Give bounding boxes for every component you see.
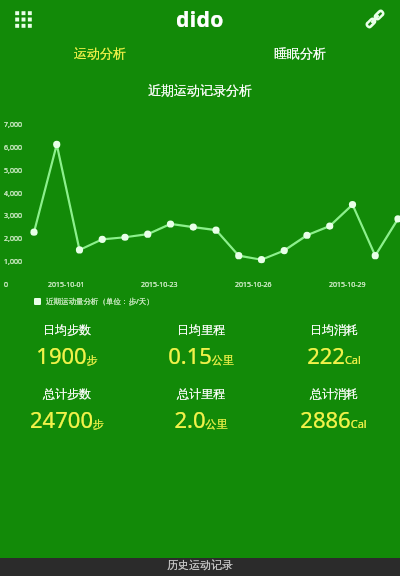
staticText: 总计消耗 <box>310 386 358 401</box>
staticText: 0 <box>4 280 9 290</box>
button[interactable]: 日均消耗 <box>267 322 400 370</box>
staticText: 6,000 <box>4 143 22 153</box>
button[interactable]: 历史运动记录 <box>0 558 400 576</box>
staticText: 日均消耗 <box>310 322 358 337</box>
staticText: 运动分析 <box>74 45 126 61</box>
staticText: 历史运动记录 <box>167 558 233 572</box>
staticText: 0.15公里 <box>168 340 234 370</box>
staticText: 2015-10-01 <box>48 280 85 290</box>
staticText: 总计步数 <box>43 386 91 401</box>
staticText: dido <box>176 5 224 34</box>
button[interactable]: 总计消耗 <box>267 386 400 434</box>
staticText: 2015-10-26 <box>235 280 272 290</box>
staticText: 7,000 <box>4 120 22 130</box>
button[interactable]: Link device <box>360 4 390 34</box>
staticText: 222Cal <box>307 340 361 370</box>
staticText: 2015-10-23 <box>141 280 178 290</box>
button[interactable]: 总计步数 <box>0 386 134 434</box>
button[interactable]: Menu <box>8 4 38 34</box>
staticText: 4,000 <box>4 189 22 199</box>
staticText: 3,000 <box>4 211 22 221</box>
staticText: 1,000 <box>4 257 22 267</box>
button[interactable]: 运动分析 <box>0 38 200 68</box>
button[interactable]: 日均步数 <box>0 322 134 370</box>
staticText: 2.0公里 <box>174 404 228 434</box>
staticText: 日均步数 <box>43 322 91 337</box>
staticText: 1900步 <box>36 340 98 370</box>
staticText: 5,000 <box>4 166 22 176</box>
staticText: 24700步 <box>30 404 104 434</box>
staticText: 日均里程 <box>177 322 225 337</box>
staticText: 总计里程 <box>177 386 225 401</box>
button[interactable]: 睡眠分析 <box>200 38 400 68</box>
button[interactable]: 总计里程 <box>134 386 267 434</box>
staticText: 2,000 <box>4 234 22 244</box>
staticText: 睡眠分析 <box>274 45 326 61</box>
staticText: 2015-10-29 <box>329 280 366 290</box>
button[interactable]: 日均里程 <box>134 322 267 370</box>
staticText: 2886Cal <box>300 404 367 434</box>
staticText: 近期运动量分析（单位：步/天） <box>46 296 154 306</box>
staticText: 近期运动记录分析 <box>0 82 400 98</box>
